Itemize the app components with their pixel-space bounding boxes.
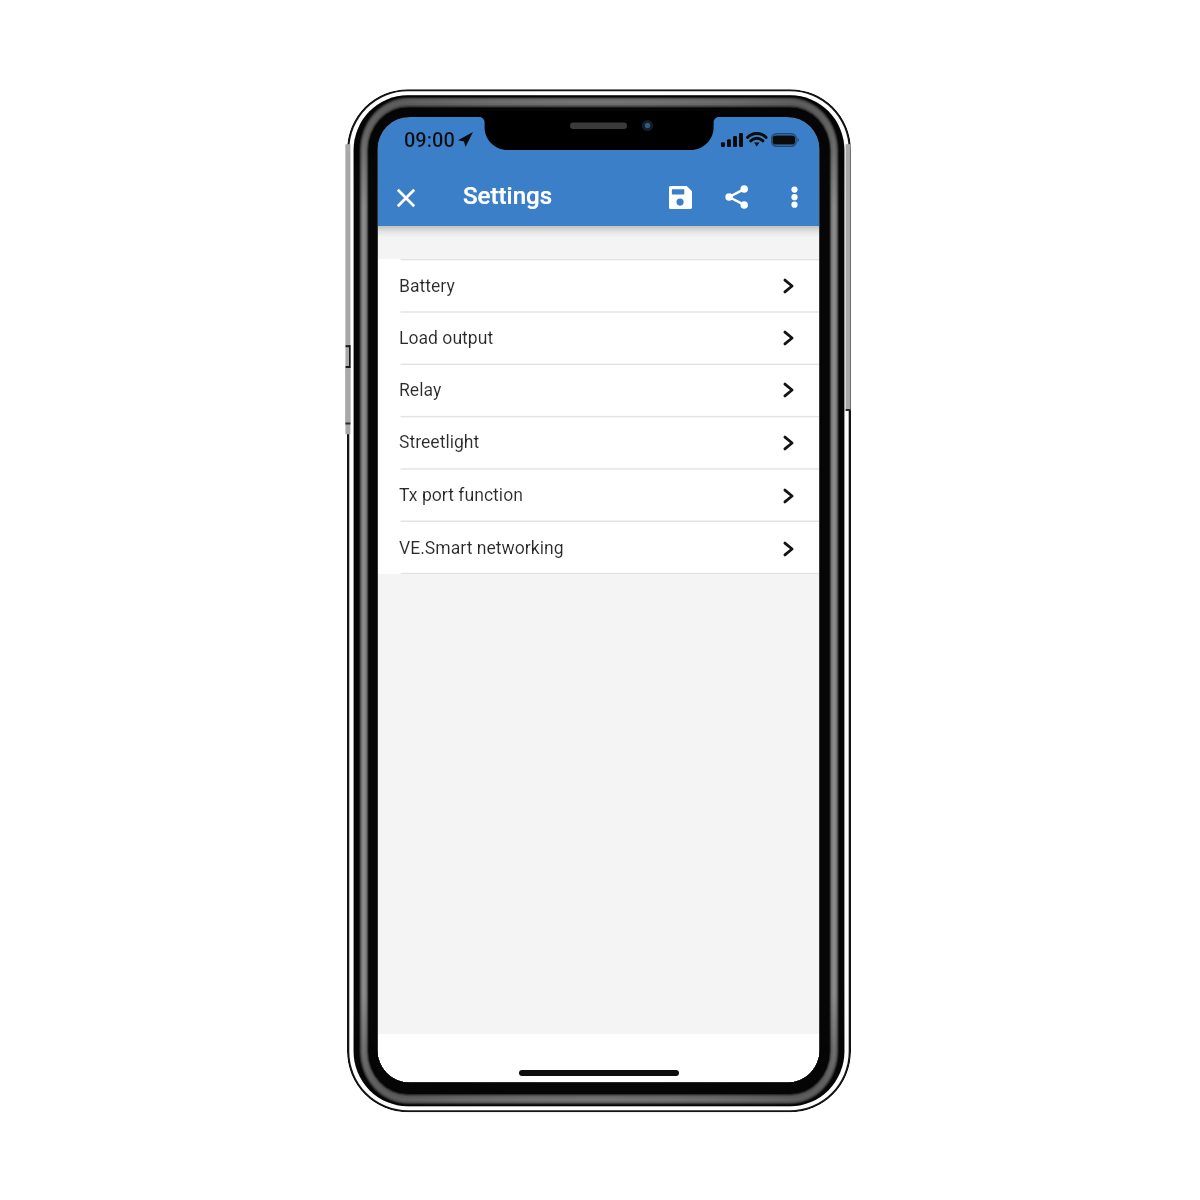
button[interactable]: Share bbox=[725, 185, 749, 209]
button[interactable]: Battery bbox=[377, 260, 821, 312]
button[interactable]: Relay bbox=[377, 364, 821, 416]
button[interactable]: Save bbox=[669, 186, 692, 209]
staticText: 09:00 bbox=[404, 128, 455, 151]
staticText: Settings bbox=[463, 182, 553, 210]
button[interactable]: More options bbox=[783, 185, 806, 208]
button[interactable]: Tx port function bbox=[377, 469, 821, 522]
staticText: Relay bbox=[399, 380, 442, 401]
button[interactable]: VE.Smart networking bbox=[377, 522, 821, 575]
button[interactable]: Load output bbox=[377, 312, 821, 364]
staticText: Streetlight bbox=[399, 432, 480, 453]
staticText: Battery bbox=[399, 276, 455, 297]
button[interactable]: Close bbox=[397, 189, 415, 207]
staticText: Tx port function bbox=[399, 485, 523, 506]
staticText: Load output bbox=[399, 328, 494, 349]
button[interactable]: Streetlight bbox=[377, 416, 821, 469]
staticText: VE.Smart networking bbox=[399, 538, 564, 559]
